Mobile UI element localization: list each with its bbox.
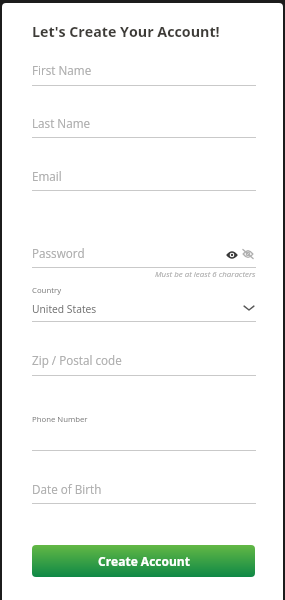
- staticText: Must be at least 6 characters: [155, 269, 256, 280]
- staticText: First Name: [32, 62, 92, 78]
- button[interactable]: Show password: [224, 247, 240, 263]
- staticText: Create Account: [98, 553, 190, 569]
- button[interactable]: [32, 412, 256, 450]
- button[interactable]: [32, 112, 256, 137]
- button[interactable]: [32, 164, 256, 190]
- button[interactable]: [32, 59, 256, 85]
- staticText: United States: [32, 302, 97, 316]
- button[interactable]: [32, 478, 256, 504]
- staticText: Last Name: [32, 115, 91, 131]
- staticText: Email: [32, 168, 62, 184]
- staticText: Let's Create Your Account!: [32, 22, 220, 41]
- button[interactable]: [32, 285, 256, 320]
- button[interactable]: Hide password: [240, 246, 256, 262]
- staticText: Zip / Postal code: [32, 352, 122, 368]
- button[interactable]: [32, 241, 256, 266]
- staticText: Country: [32, 285, 62, 296]
- button[interactable]: Create Account: [32, 545, 255, 577]
- staticText: Date of Birth: [32, 481, 102, 497]
- staticText: Password: [32, 245, 85, 261]
- button[interactable]: [32, 349, 256, 375]
- staticText: Phone Number: [32, 414, 88, 425]
